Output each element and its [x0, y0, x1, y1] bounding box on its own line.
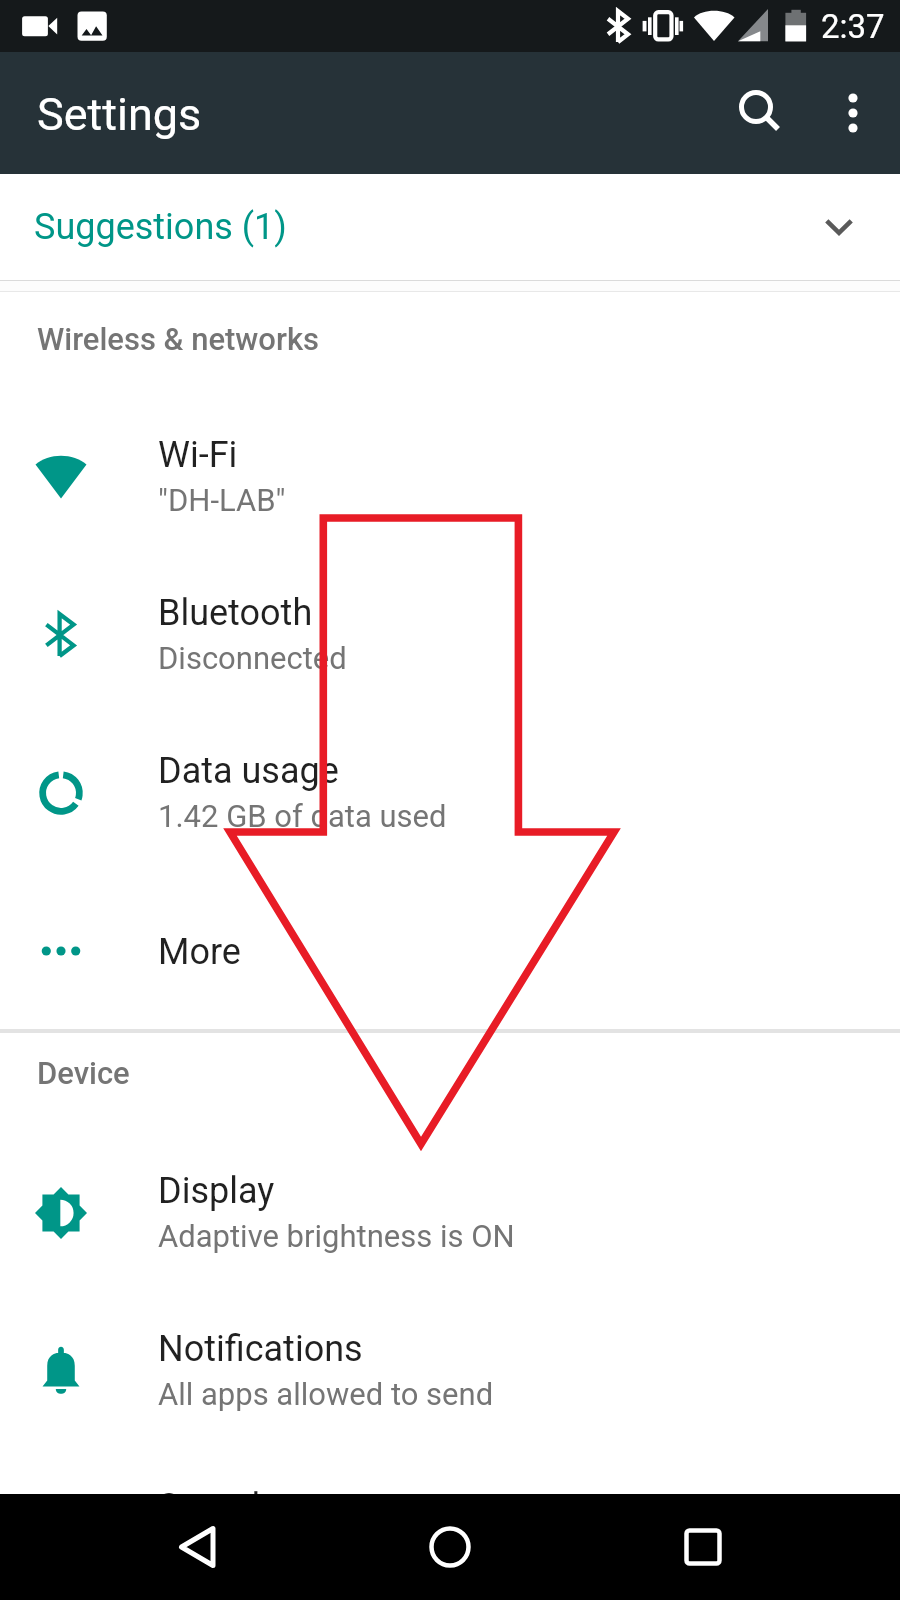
staticText: Display	[158, 1170, 275, 1212]
button[interactable]: More	[0, 873, 900, 1031]
staticText: Settings	[37, 88, 202, 141]
button[interactable]: Recent apps	[655, 1499, 751, 1595]
staticText: Data usage	[158, 750, 339, 792]
staticText: Suggestions (1)	[34, 206, 287, 248]
button[interactable]: Sound	[0, 1451, 900, 1600]
staticText: Adaptive brightness is ON	[158, 1218, 515, 1254]
staticText: Disconnected	[158, 640, 347, 676]
button[interactable]: Expand suggestions	[791, 179, 887, 275]
button[interactable]: Home	[402, 1499, 498, 1595]
button[interactable]: Wi-Fi	[0, 399, 900, 557]
staticText: 2:37	[821, 7, 885, 46]
staticText: Wireless & networks	[37, 321, 320, 357]
button[interactable]: Display	[0, 1135, 900, 1293]
staticText: Wi-Fi	[158, 434, 238, 476]
staticText: All apps allowed to send	[158, 1376, 494, 1412]
button[interactable]: Suggestions (1)	[0, 174, 900, 280]
button[interactable]: Bluetooth	[0, 557, 900, 715]
button[interactable]: Back	[151, 1499, 247, 1595]
button[interactable]: More options	[805, 65, 900, 161]
staticText: 1.42 GB of data used	[158, 798, 447, 834]
staticText: "DH-LAB"	[158, 482, 286, 518]
staticText: More	[158, 931, 241, 973]
staticText: Sound	[158, 1486, 260, 1528]
staticText: Device	[37, 1055, 130, 1091]
button[interactable]: Data usage	[0, 715, 900, 873]
button[interactable]: Search	[713, 65, 809, 161]
staticText: Ring volume at 70%	[158, 1534, 428, 1570]
staticText: Notifications	[158, 1328, 363, 1370]
staticText: Bluetooth	[158, 592, 313, 634]
button[interactable]: Notifications	[0, 1293, 900, 1451]
